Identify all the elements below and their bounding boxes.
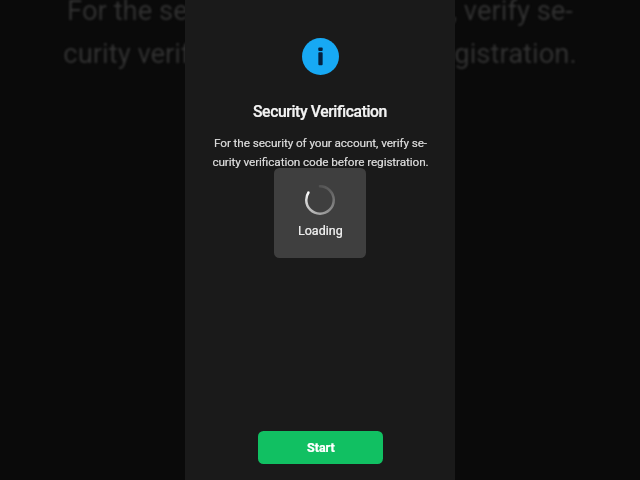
staticText: Security Verification <box>253 102 387 120</box>
button[interactable]: Start <box>258 431 383 464</box>
staticText: Start <box>307 440 335 455</box>
staticText: Loading <box>298 223 343 238</box>
staticText: For the security of your account, verify… <box>63 0 577 70</box>
other: Loading <box>305 185 335 215</box>
other: Information <box>302 38 339 75</box>
staticText: For the security of your account, verify… <box>212 136 429 169</box>
